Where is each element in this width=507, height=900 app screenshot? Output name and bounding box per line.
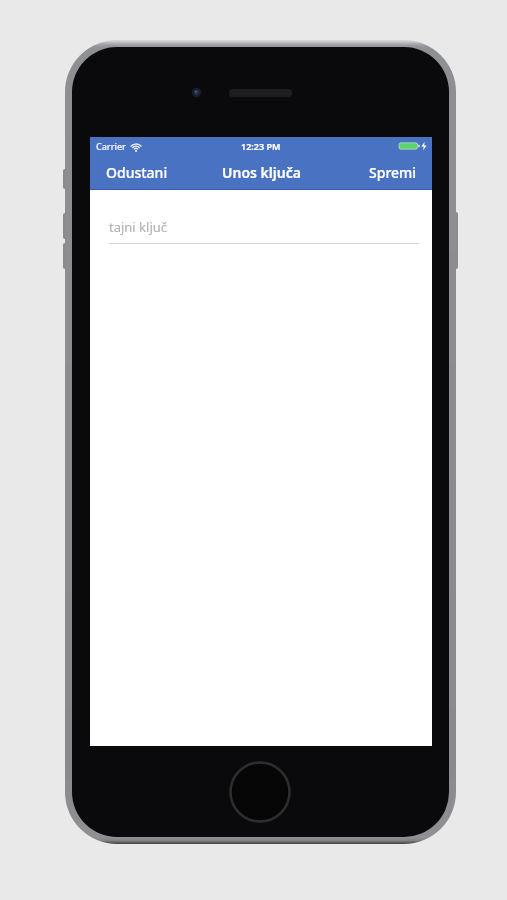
staticText: tajni ključ [109,218,168,236]
button[interactable]: tajni ključ [109,215,419,239]
staticText: 12:23 PM [241,140,281,152]
button[interactable]: Odustani [106,163,168,182]
staticText: Unos ključa [222,163,301,182]
staticText: Odustani [106,163,168,182]
staticText: Carrier [96,140,126,152]
staticText: Spremi [369,163,417,182]
button[interactable]: Spremi [369,163,417,182]
